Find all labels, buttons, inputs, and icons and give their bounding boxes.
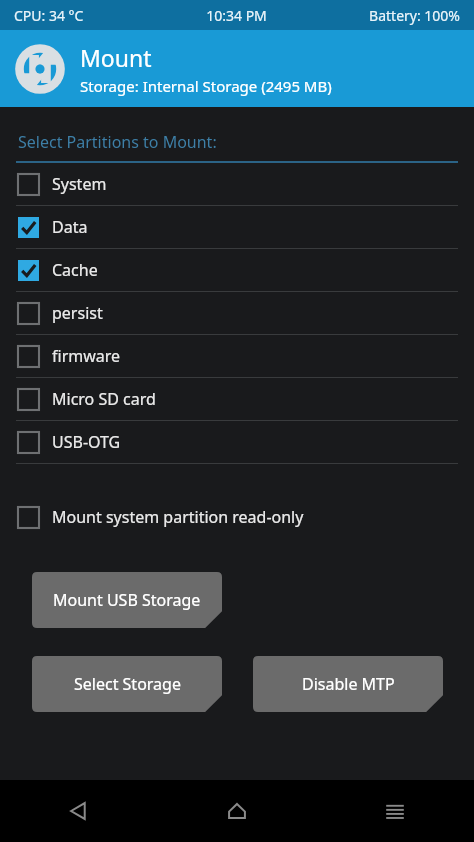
staticText: Mount USB Storage <box>53 589 201 611</box>
button[interactable]: USB-OTG <box>0 421 474 463</box>
button[interactable]: Mount USB Storage <box>32 572 222 628</box>
staticText: firmware <box>52 345 121 367</box>
button[interactable]: Micro SD card <box>0 378 474 420</box>
staticText: Disable MTP <box>302 673 395 695</box>
staticText: Micro SD card <box>52 388 156 410</box>
button[interactable]: Data <box>0 206 474 248</box>
button[interactable]: firmware <box>0 335 474 377</box>
staticText: 10:34 PM <box>162 6 311 25</box>
button[interactable]: Cache <box>0 249 474 291</box>
staticText: Battery: 100% <box>311 6 460 25</box>
staticText: USB-OTG <box>52 431 121 453</box>
button[interactable]: Home <box>158 780 316 842</box>
staticText: CPU: 34 °C <box>14 6 162 25</box>
button[interactable]: System <box>0 163 474 205</box>
staticText: Mount <box>80 42 152 73</box>
button[interactable]: Select Storage <box>32 656 222 712</box>
button[interactable]: Menu <box>316 780 474 842</box>
button[interactable]: Back <box>0 780 158 842</box>
button[interactable]: persist <box>0 292 474 334</box>
button[interactable]: Mount system partition read-only <box>0 496 474 538</box>
staticText: Storage: Internal Storage (2495 MB) <box>80 76 332 96</box>
staticText: Cache <box>52 259 98 281</box>
staticText: Data <box>52 216 88 238</box>
staticText: Mount system partition read-only <box>52 506 304 528</box>
button[interactable]: Disable MTP <box>253 656 443 712</box>
staticText: Select Storage <box>74 673 181 695</box>
staticText: Select Partitions to Mount: <box>18 131 217 153</box>
staticText: System <box>52 173 107 195</box>
staticText: persist <box>52 302 103 324</box>
